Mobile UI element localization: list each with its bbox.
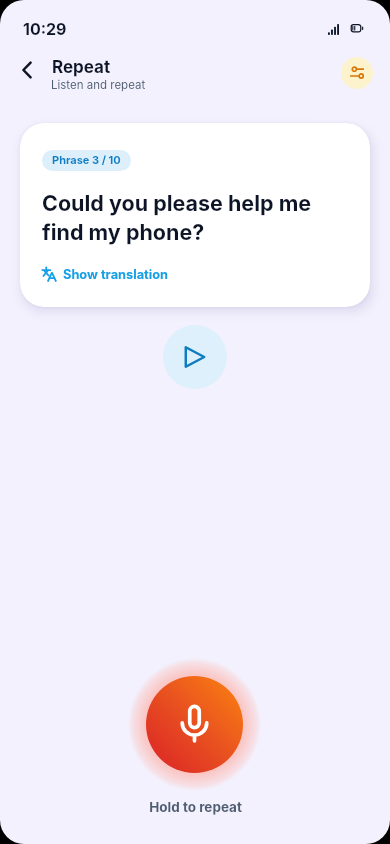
button[interactable]: Show translation — [42, 266, 169, 282]
staticText: 10:29 — [23, 19, 67, 38]
button[interactable]: Play — [163, 325, 227, 389]
button[interactable]: Settings — [341, 57, 373, 89]
staticText: Listen and repeat — [51, 76, 146, 92]
button[interactable]: Back — [9, 52, 45, 88]
staticText: Could you please help me find my phone? — [42, 188, 342, 246]
staticText: Hold to repeat — [149, 799, 242, 815]
staticText: Repeat — [52, 56, 111, 77]
button[interactable]: Hold to repeat — [146, 676, 243, 773]
staticText: Phrase 3 / 10 — [52, 154, 121, 167]
staticText: Show translation — [63, 266, 169, 282]
